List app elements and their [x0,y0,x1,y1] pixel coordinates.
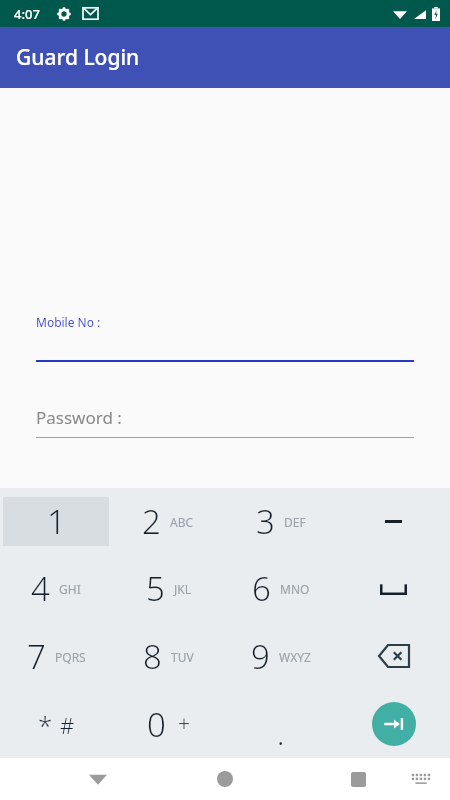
staticText: * [38,707,53,742]
staticText: WXYZ [279,649,311,665]
staticText: 9 [251,634,270,679]
staticText: 7 [27,634,46,679]
button[interactable]: Home [205,759,245,799]
staticText: TUV [171,649,194,665]
staticText: 8 [143,634,162,679]
staticText: + [178,710,190,739]
button[interactable]: Space [340,564,447,613]
staticText: DEF [284,514,306,530]
staticText: 0 [147,702,166,747]
staticText: 3 [256,499,275,544]
staticText: 5 [146,566,165,611]
button[interactable]: 7 [3,631,109,681]
button[interactable]: Enter [340,699,447,749]
button[interactable]: Switch keyboard [404,762,438,796]
button[interactable]: 9 [227,631,334,681]
staticText: 6 [252,566,271,611]
staticText: Guard Login [16,43,140,72]
button[interactable]: 5 [115,564,221,613]
button[interactable]: Recents [338,759,378,799]
button[interactable]: 3 [227,497,334,546]
button[interactable]: Mobile No : [36,314,414,330]
button[interactable]: 6 [227,564,334,613]
staticText: . [277,713,285,749]
button[interactable]: 2 [115,497,221,546]
staticText: 1 [47,499,66,544]
staticText: Mobile No : [36,314,101,330]
button[interactable]: Password : [36,406,414,429]
button[interactable]: * [3,699,109,749]
button[interactable]: Period [227,699,334,749]
button[interactable]: 1 [3,497,109,546]
button[interactable]: Minus [340,497,447,546]
staticText: GHI [59,581,81,597]
staticText: ABC [170,514,194,530]
staticText: JKL [174,581,191,597]
staticText: PQRS [55,649,86,665]
staticText: 4 [31,566,50,611]
button[interactable]: Hide keyboard [78,759,118,799]
staticText: # [60,710,75,740]
staticText: MNO [280,581,310,597]
staticText: 2 [142,499,161,544]
button[interactable]: 8 [115,631,221,681]
button[interactable]: 0 [115,699,221,749]
staticText: 4:07 [14,5,40,23]
button[interactable]: 4 [3,564,109,613]
staticText: Password : [36,406,122,429]
button[interactable]: Backspace [340,631,447,681]
